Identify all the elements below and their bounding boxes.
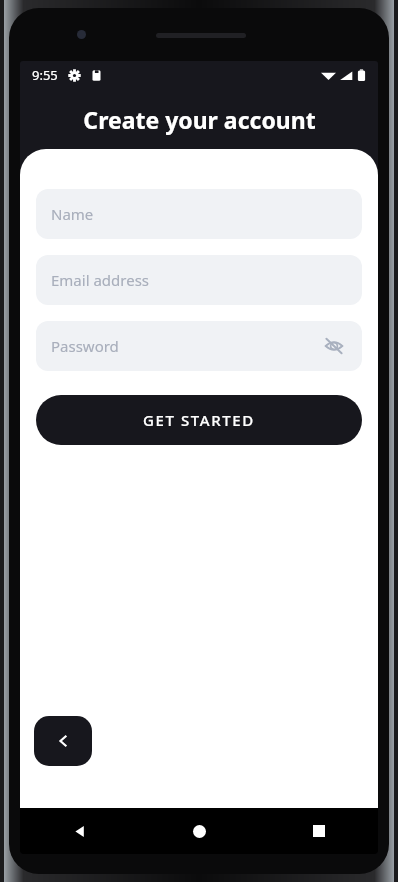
button[interactable]: Show password <box>321 333 347 359</box>
button[interactable]: Home <box>140 808 259 854</box>
staticText: Email address <box>51 270 150 290</box>
button[interactable]: GET STARTED <box>36 395 362 445</box>
staticText: Password <box>51 336 119 356</box>
staticText: 9:55 <box>32 66 58 84</box>
button[interactable]: Recent apps <box>259 808 378 854</box>
staticText: Create your account <box>83 104 316 135</box>
button[interactable]: Password <box>36 321 362 371</box>
button[interactable]: Name <box>36 189 362 239</box>
staticText: Name <box>51 204 94 224</box>
button[interactable]: Back <box>20 808 140 854</box>
button[interactable]: Back <box>34 716 92 766</box>
staticText: GET STARTED <box>143 410 255 430</box>
button[interactable]: Email address <box>36 255 362 305</box>
